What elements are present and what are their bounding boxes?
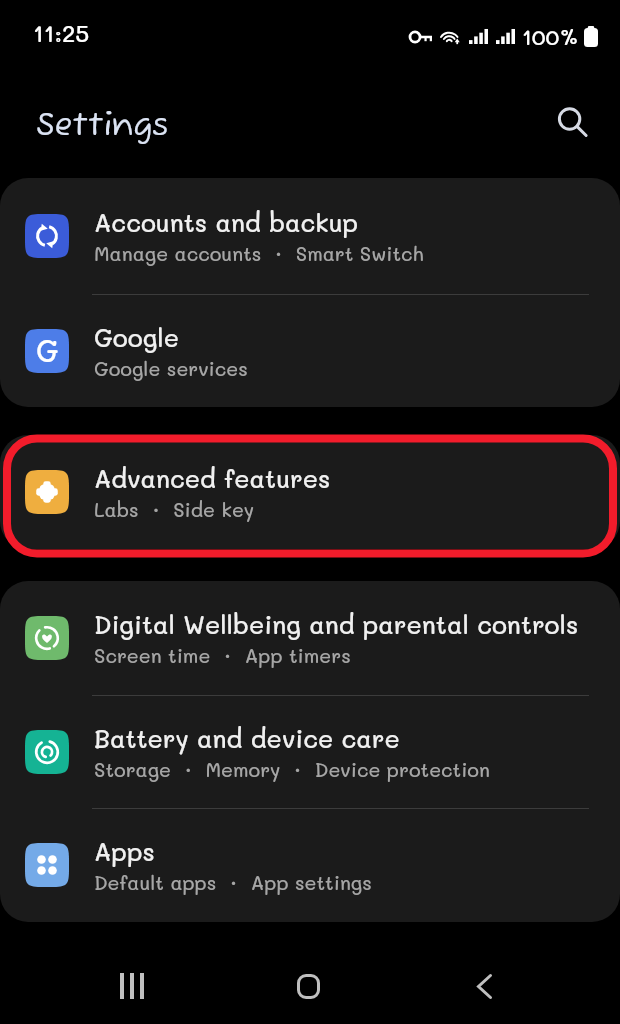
staticText: Default apps · App settings (94, 870, 372, 895)
staticText: Google (94, 321, 180, 353)
button[interactable]: Accounts and backup (0, 178, 620, 294)
button[interactable]: G (0, 294, 620, 407)
button[interactable]: Digital Wellbeing and parental controls (0, 581, 620, 695)
staticText: Screen time · App timers (94, 643, 351, 668)
staticText: Google services (94, 356, 248, 381)
button[interactable]: Recent apps (102, 956, 162, 1016)
staticText: Accounts and backup (94, 206, 359, 238)
button[interactable]: Home (278, 956, 338, 1016)
staticText: 11:25 (33, 17, 90, 48)
staticText: Settings (36, 106, 169, 146)
button[interactable]: Apps (0, 808, 620, 922)
staticText: Labs · Side key (94, 497, 255, 522)
staticText: Digital Wellbeing and parental controls (94, 608, 579, 640)
staticText: Advanced features (94, 462, 331, 494)
button[interactable]: Back (454, 956, 514, 1016)
staticText: Apps (94, 835, 155, 867)
staticText: Storage · Memory · Device protection (94, 757, 490, 782)
staticText: Battery and device care (94, 722, 400, 754)
button[interactable]: Search (547, 97, 596, 146)
staticText: Manage accounts · Smart Switch (94, 241, 424, 266)
staticText: G (36, 331, 59, 370)
staticText: 100% (522, 22, 580, 51)
button[interactable]: Battery and device care (0, 695, 620, 808)
button[interactable]: Advanced features (0, 435, 620, 549)
